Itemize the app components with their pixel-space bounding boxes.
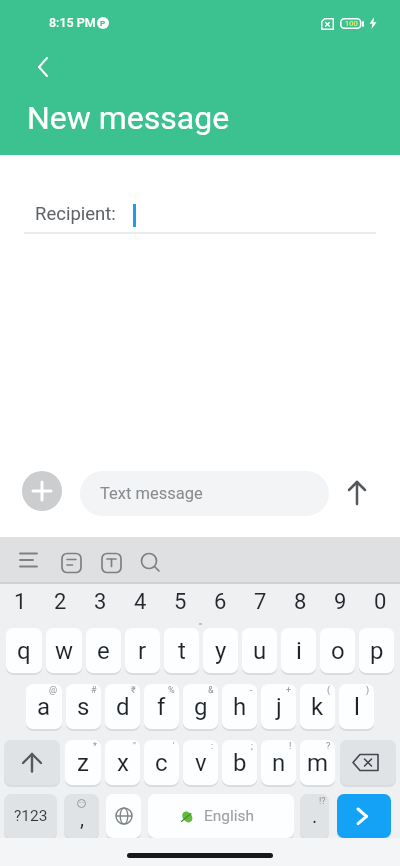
button[interactable]: 6: [200, 584, 240, 620]
staticText: +: [286, 685, 292, 696]
button[interactable]: k: [300, 684, 335, 729]
staticText: 0: [374, 589, 387, 615]
staticText: 2: [54, 589, 67, 615]
button[interactable]: o: [320, 628, 355, 673]
staticText: h: [233, 693, 247, 721]
staticText: b: [233, 749, 247, 777]
staticText: 100: [345, 19, 358, 28]
staticText: English: [204, 807, 255, 825]
staticText: r: [138, 637, 147, 665]
staticText: p: [370, 637, 384, 665]
staticText: s: [77, 693, 90, 721]
button[interactable]: 0: [360, 584, 400, 620]
staticText: :: [211, 741, 214, 752]
button[interactable]: z: [65, 740, 101, 785]
button[interactable]: 3: [80, 584, 120, 620]
staticText: ?123: [14, 807, 48, 825]
staticText: z: [77, 749, 89, 777]
staticText: n: [272, 749, 286, 777]
button[interactable]: l: [339, 684, 374, 729]
staticText: y: [215, 637, 227, 665]
button[interactable]: g: [183, 684, 218, 729]
button[interactable]: English: [148, 794, 294, 838]
staticText: x: [117, 749, 129, 777]
staticText: ,: [80, 807, 84, 830]
button[interactable]: Text message: [80, 471, 329, 516]
button[interactable]: 9: [320, 584, 360, 620]
button[interactable]: 2: [40, 584, 80, 620]
staticText: t: [178, 637, 186, 665]
button[interactable]: 7: [240, 584, 280, 620]
button[interactable]: w: [46, 628, 82, 673]
button[interactable]: n: [261, 740, 296, 785]
staticText: a: [37, 693, 51, 721]
button[interactable]: u: [242, 628, 277, 673]
staticText: d: [116, 693, 130, 721]
staticText: New message: [27, 99, 230, 137]
button[interactable]: c: [144, 740, 179, 785]
button[interactable]: h: [222, 684, 257, 729]
button[interactable]: [24, 46, 64, 86]
staticText: l: [354, 693, 360, 721]
button[interactable]: ,: [64, 794, 99, 838]
button[interactable]: [4, 740, 60, 785]
staticText: #: [91, 685, 97, 696]
button[interactable]: m: [300, 740, 335, 785]
button[interactable]: [12, 545, 44, 577]
button[interactable]: f: [144, 684, 179, 729]
staticText: e: [97, 637, 110, 665]
staticText: o: [331, 637, 345, 665]
staticText: w: [55, 637, 74, 665]
staticText: ): [366, 685, 370, 696]
staticText: 8:15 PM: [49, 15, 96, 30]
staticText: -: [250, 685, 253, 696]
button[interactable]: [55, 545, 87, 577]
button[interactable]: j: [261, 684, 296, 729]
staticText: g: [194, 693, 208, 721]
staticText: %: [168, 685, 175, 696]
button[interactable]: t: [164, 628, 199, 673]
button[interactable]: [337, 794, 391, 838]
button[interactable]: 1: [0, 584, 40, 620]
staticText: 3: [94, 589, 107, 615]
button[interactable]: i: [281, 628, 316, 673]
staticText: ?: [326, 741, 331, 752]
button[interactable]: 4: [120, 584, 160, 620]
staticText: ₹: [131, 685, 136, 696]
button[interactable]: 5: [160, 584, 200, 620]
button[interactable]: [338, 471, 376, 516]
staticText: u: [253, 637, 267, 665]
button[interactable]: [95, 545, 127, 577]
button[interactable]: a: [26, 684, 62, 729]
staticText: 6: [214, 589, 227, 615]
button[interactable]: d: [105, 684, 140, 729]
button[interactable]: r: [125, 628, 160, 673]
button[interactable]: [133, 545, 165, 577]
button[interactable]: p: [359, 628, 394, 673]
staticText: 8: [294, 589, 307, 615]
button[interactable]: e: [86, 628, 121, 673]
staticText: 7: [254, 589, 267, 615]
staticText: *: [93, 741, 97, 752]
staticText: ;: [251, 741, 253, 752]
staticText: k: [311, 693, 324, 721]
button[interactable]: .: [300, 794, 329, 838]
button[interactable]: 8: [280, 584, 320, 620]
button[interactable]: [106, 794, 141, 838]
button[interactable]: [340, 740, 396, 785]
button[interactable]: y: [203, 628, 238, 673]
staticText: ": [133, 741, 136, 752]
button[interactable]: v: [183, 740, 218, 785]
staticText: &: [208, 685, 214, 696]
staticText: Recipient:: [35, 203, 116, 225]
button[interactable]: q: [6, 628, 42, 673]
button[interactable]: s: [66, 684, 101, 729]
staticText: 4: [134, 589, 147, 615]
button[interactable]: x: [105, 740, 140, 785]
staticText: ': [173, 741, 175, 752]
button[interactable]: b: [222, 740, 257, 785]
button[interactable]: [22, 471, 62, 511]
button[interactable]: ?123: [4, 794, 57, 838]
staticText: (: [327, 685, 331, 696]
staticText: !?: [319, 796, 326, 807]
